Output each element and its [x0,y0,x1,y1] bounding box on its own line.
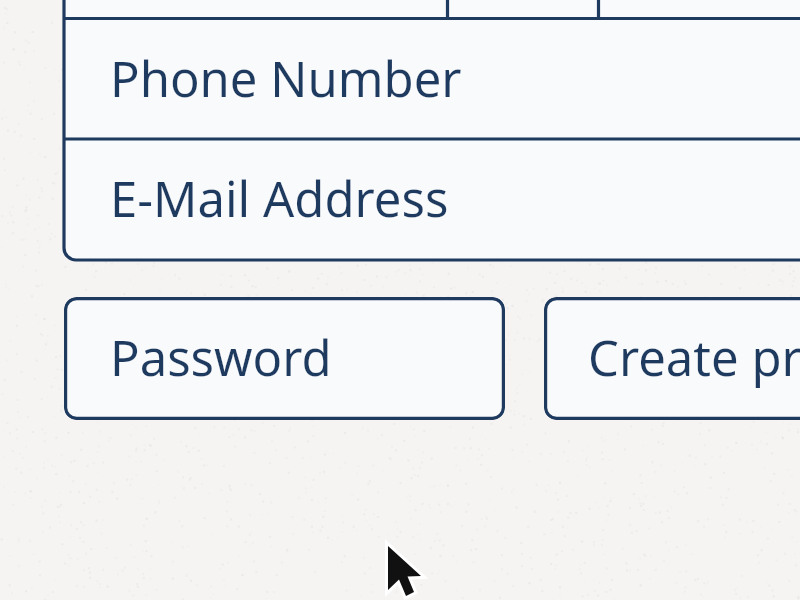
button[interactable]: E-Mail Address [66,141,800,258]
staticText: Create profile [588,324,800,391]
staticText: Phone Number [110,45,462,112]
button[interactable]: Create profile [544,297,800,420]
staticText: E-Mail Address [110,165,449,232]
staticText: Password [110,324,332,391]
button[interactable]: Phone Number [66,20,800,138]
button[interactable]: Password [64,297,505,420]
other: Pointer [382,540,434,600]
